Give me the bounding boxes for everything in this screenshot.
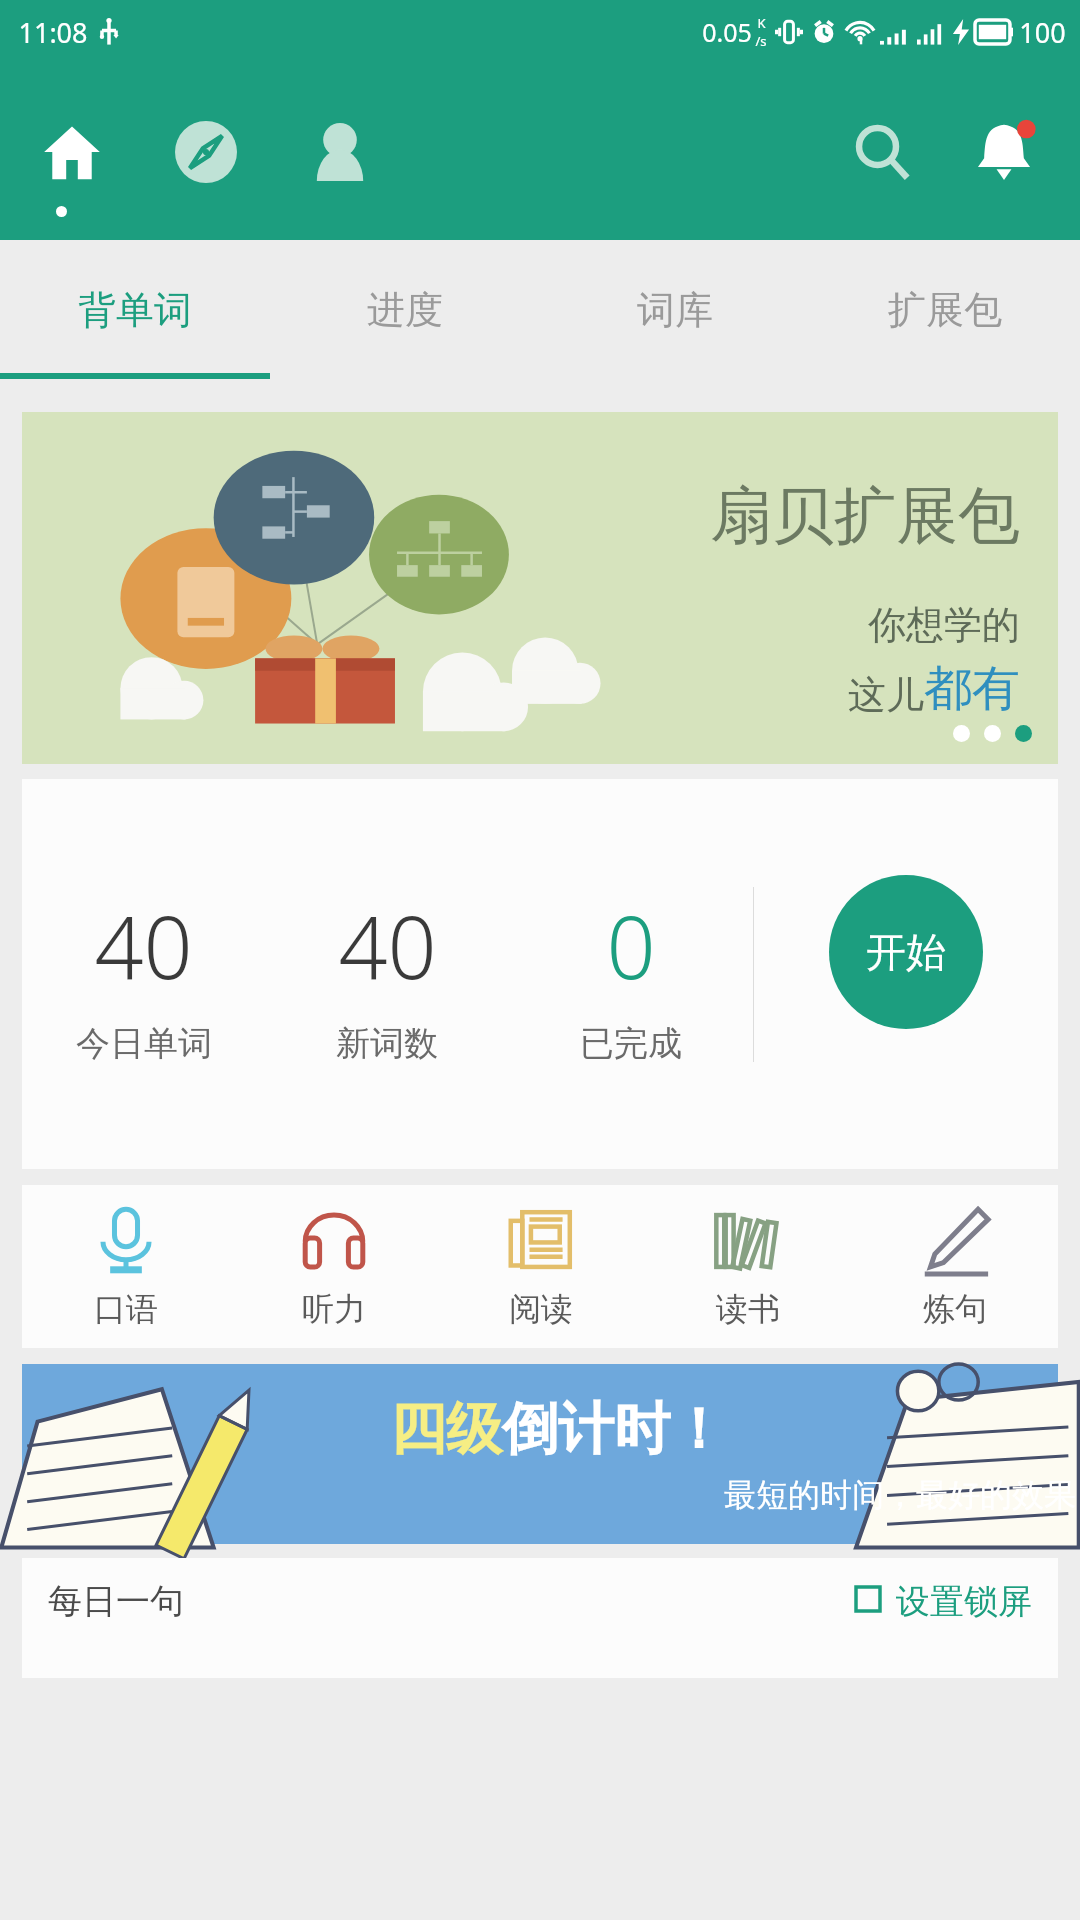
button[interactable]: 每日一句	[22, 1558, 1058, 1678]
staticText: 新词数	[336, 1022, 438, 1065]
button[interactable]: Search	[840, 110, 924, 194]
staticText: 倒计时！	[502, 1394, 726, 1465]
staticText: 今日单词	[76, 1022, 212, 1065]
staticText: 四级	[390, 1394, 502, 1465]
staticText: 炼句	[923, 1289, 987, 1329]
staticText: 100	[1019, 14, 1066, 51]
button[interactable]: 词库	[540, 240, 810, 379]
staticText: 你想学的	[868, 601, 1020, 649]
staticText: 0	[606, 887, 656, 1004]
staticText: 每日一句	[48, 1580, 184, 1623]
button[interactable]: Profile	[298, 110, 382, 194]
staticText: 词库	[637, 286, 713, 334]
staticText: 阅读	[509, 1289, 573, 1329]
staticText: K	[757, 14, 766, 32]
button[interactable]: Discover	[164, 110, 248, 194]
staticText: 已完成	[580, 1022, 682, 1065]
staticText: 这儿	[848, 671, 924, 719]
button[interactable]: 进度	[270, 240, 540, 379]
staticText: 最短的时间，最好的效果	[724, 1475, 1076, 1515]
button[interactable]: 听力	[230, 1185, 437, 1348]
button[interactable]: 背单词	[0, 240, 270, 379]
staticText: /s	[755, 32, 767, 50]
button[interactable]: 炼句	[851, 1185, 1058, 1348]
staticText: 扇贝扩展包	[710, 477, 1020, 555]
button[interactable]: 读书	[644, 1185, 851, 1348]
staticText: 设置锁屏	[896, 1580, 1032, 1623]
staticText: 背单词	[78, 286, 192, 334]
button[interactable]: 开始	[829, 875, 983, 1029]
button[interactable]: Notifications	[962, 110, 1046, 194]
button[interactable]: Home	[30, 110, 114, 194]
staticText: 11:08	[18, 14, 88, 51]
button[interactable]: 扇贝扩展包	[22, 412, 1058, 764]
staticText: 都有	[924, 659, 1020, 719]
staticText: 读书	[716, 1289, 780, 1329]
staticText: 口语	[94, 1289, 158, 1329]
staticText: 听力	[302, 1289, 366, 1329]
button[interactable]: 四级	[22, 1364, 1058, 1544]
button[interactable]: 扩展包	[810, 240, 1080, 379]
staticText: 扩展包	[888, 286, 1002, 334]
staticText: 40	[94, 887, 193, 1004]
button[interactable]: 口语	[22, 1185, 230, 1348]
staticText: 40	[338, 887, 437, 1004]
staticText: 进度	[367, 286, 443, 334]
staticText: 开始	[866, 927, 946, 977]
staticText: 0.05	[702, 15, 752, 49]
button[interactable]: 阅读	[437, 1185, 644, 1348]
